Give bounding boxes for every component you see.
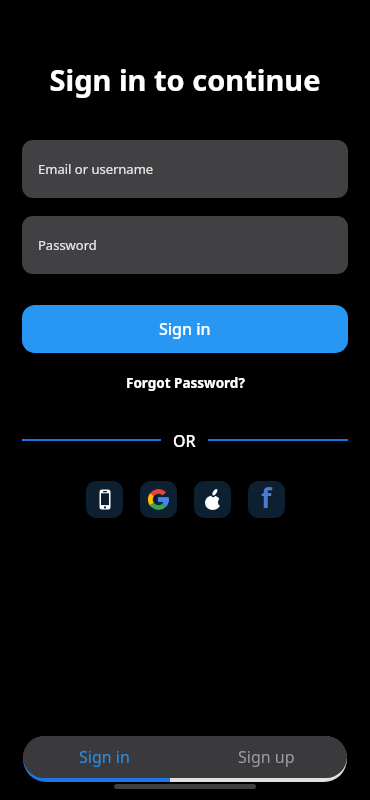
button[interactable]: Forgot Password? [126,374,245,392]
staticText: Password [38,236,97,254]
staticText: Sign in [159,318,211,340]
button[interactable]: Email or username [22,140,348,198]
staticText: f [261,481,272,516]
button[interactable]: Password [22,216,348,274]
button[interactable] [86,481,123,518]
button[interactable]: f [248,481,285,518]
staticText: Forgot Password? [126,374,245,392]
button[interactable]: Sign in [22,305,348,353]
staticText: Sign up [238,746,295,768]
staticText: Sign in [79,746,130,768]
button[interactable]: Sign in [23,736,185,778]
staticText: OR [173,430,196,450]
button[interactable] [194,481,231,518]
button[interactable] [140,481,177,518]
staticText: Email or username [38,160,154,178]
staticText: Sign in to continue [0,60,370,99]
button[interactable]: Sign up [185,736,347,778]
